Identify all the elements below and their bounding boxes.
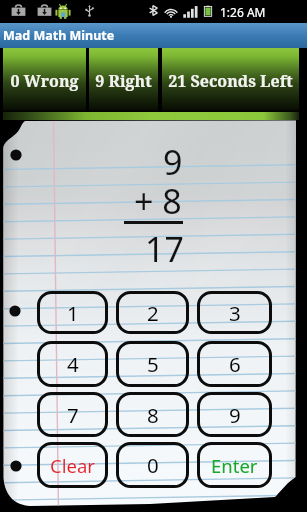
- button[interactable]: 3: [197, 291, 272, 334]
- staticText: 7: [67, 401, 79, 429]
- button[interactable]: 1: [37, 291, 108, 334]
- staticText: 2: [147, 299, 159, 327]
- button[interactable]: 4: [37, 341, 108, 387]
- button[interactable]: 21 Seconds Left: [162, 48, 299, 112]
- staticText: 8: [147, 401, 159, 429]
- staticText: 9 Right: [95, 70, 152, 92]
- button[interactable]: 2: [116, 291, 189, 334]
- button[interactable]: 5: [116, 341, 189, 387]
- staticText: 17: [145, 226, 184, 272]
- button[interactable]: 9: [197, 392, 272, 437]
- staticText: 9: [229, 401, 241, 429]
- button[interactable]: 9 Right: [89, 48, 158, 112]
- button[interactable]: 7: [37, 392, 108, 437]
- staticText: 0: [147, 451, 159, 479]
- staticText: 3: [229, 299, 241, 327]
- staticText: 0 Wrong: [10, 70, 79, 92]
- staticText: 4: [67, 350, 79, 378]
- staticText: 1:26 AM: [220, 4, 266, 20]
- button[interactable]: 0: [116, 442, 189, 488]
- button[interactable]: 6: [197, 341, 272, 387]
- staticText: + 8: [134, 178, 182, 224]
- staticText: 5: [147, 350, 159, 378]
- staticText: 1: [67, 299, 79, 327]
- staticText: Mad Math Minute: [3, 27, 115, 44]
- staticText: Enter: [211, 453, 258, 478]
- staticText: 21 Seconds Left: [168, 70, 293, 92]
- button[interactable]: Enter: [197, 442, 272, 488]
- button[interactable]: Clear: [37, 442, 108, 488]
- staticText: Clear: [50, 453, 95, 478]
- button[interactable]: 8: [116, 392, 189, 437]
- button[interactable]: 0 Wrong: [3, 48, 86, 112]
- staticText: 9: [163, 139, 183, 185]
- staticText: 6: [229, 350, 241, 378]
